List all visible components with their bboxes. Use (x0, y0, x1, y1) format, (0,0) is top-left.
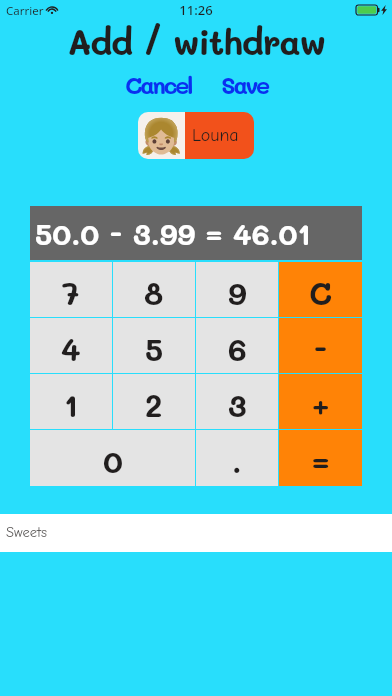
staticText: Louna (192, 125, 239, 146)
staticText: 2 (145, 384, 163, 424)
button[interactable]: 7 (30, 262, 112, 317)
staticText: 3 (228, 384, 247, 424)
staticText: 5 (145, 328, 164, 368)
staticText: Add / withdraw (0, 18, 392, 64)
staticText: - (314, 328, 328, 368)
button[interactable]: 👧🏼 (138, 112, 254, 159)
staticText: 50.0 - 3.99 = 46.01 (35, 214, 311, 252)
button[interactable]: Cancel (117, 69, 200, 100)
staticText: 0 (103, 440, 123, 480)
staticText: 👧🏼 (140, 116, 183, 156)
staticText: 9 (228, 272, 247, 312)
other: Wi-Fi signal (47, 5, 57, 14)
staticText: Carrier (6, 3, 44, 19)
staticText: 4 (61, 328, 81, 368)
staticText: 6 (228, 328, 247, 368)
staticText: 8 (144, 272, 164, 312)
button[interactable]: . (196, 430, 278, 486)
staticText: 1 (64, 384, 78, 424)
other: Battery charging (356, 5, 380, 15)
button[interactable]: C (279, 262, 362, 317)
button[interactable]: 0 (30, 430, 195, 486)
button[interactable]: 3 (196, 374, 278, 429)
button[interactable]: Save (213, 69, 276, 100)
button[interactable]: - (279, 318, 362, 373)
staticText: 11:26 (0, 1, 392, 19)
staticText: C (309, 272, 333, 312)
button[interactable]: Sweets (0, 514, 392, 552)
staticText: . (232, 440, 242, 480)
button[interactable]: = (279, 430, 362, 486)
button[interactable]: 5 (113, 318, 195, 373)
staticText: 7 (62, 272, 80, 312)
button[interactable]: 1 (30, 374, 112, 429)
staticText: + (312, 384, 330, 424)
button[interactable]: 4 (30, 318, 112, 373)
staticText: = (312, 440, 330, 480)
staticText: Sweets (6, 524, 48, 541)
button[interactable]: + (279, 374, 362, 429)
button[interactable]: 8 (113, 262, 195, 317)
button[interactable]: 6 (196, 318, 278, 373)
button[interactable]: 9 (196, 262, 278, 317)
button[interactable]: 2 (113, 374, 195, 429)
